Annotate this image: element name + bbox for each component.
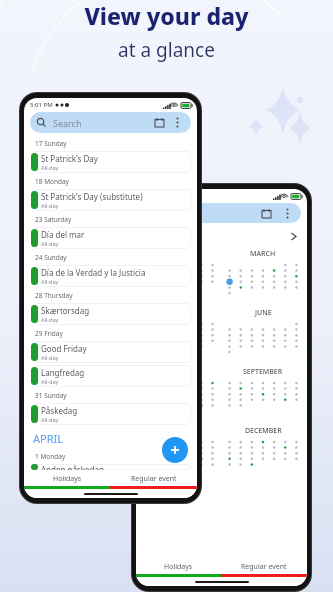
button[interactable]: Anden påskedag	[30, 464, 191, 470]
staticText: Regular event	[241, 562, 287, 572]
button[interactable]: Día de la Verdad y la Justicia	[30, 265, 191, 287]
staticText: Holidays	[164, 562, 193, 572]
button[interactable]: Calendar view	[153, 116, 166, 129]
staticText: All-day	[41, 202, 59, 209]
staticText: All-day	[41, 416, 59, 423]
staticText: 28 Thursday	[35, 291, 73, 300]
staticText: All-day	[41, 240, 59, 247]
staticText: 23 Saturday	[35, 215, 72, 224]
button[interactable]: Regular event	[221, 559, 307, 574]
staticText: All-day	[41, 164, 59, 171]
staticText: 17 Sunday	[35, 139, 67, 148]
staticText: Påskedag	[41, 405, 78, 416]
button[interactable]: Påskedag	[30, 403, 191, 425]
staticText: Good Friday	[41, 343, 87, 354]
button[interactable]: St Patrick's Day (substitute)	[30, 189, 191, 211]
staticText: APRIL	[33, 431, 64, 446]
button[interactable]: Langfredag	[30, 365, 191, 387]
button[interactable]: St Patrick's Day	[30, 151, 191, 173]
button[interactable]: More options	[171, 116, 184, 129]
staticText: 5:01 PM	[30, 101, 53, 109]
staticText: Anden påskedag	[41, 464, 104, 470]
button[interactable]: Next year	[286, 229, 300, 243]
staticText: Día del mar	[41, 229, 85, 240]
staticText: St Patrick's Day	[41, 153, 98, 164]
staticText: All-day	[41, 316, 59, 323]
staticText: St Patrick's Day (substitute)	[41, 191, 143, 202]
button[interactable]: Regular event	[110, 471, 197, 486]
staticText: All-day	[41, 354, 59, 361]
button[interactable]: Holidays	[136, 559, 221, 574]
staticText: Search	[53, 117, 82, 129]
staticText: at a glance	[118, 37, 215, 63]
button[interactable]: Add event	[162, 437, 188, 463]
staticText: Holidays	[53, 474, 82, 484]
staticText: SEPTEMBER	[243, 367, 283, 377]
staticText: NOVEMBER	[160, 426, 199, 436]
staticText: 31 Sunday	[35, 391, 67, 400]
staticText: Día de la Verdad y la Justicia	[41, 267, 146, 278]
button[interactable]: Día del mar	[30, 227, 191, 249]
staticText: 24 Sunday	[35, 253, 67, 262]
staticText: 1 Monday	[35, 452, 66, 461]
staticText: All-day	[41, 378, 59, 385]
staticText: 18 Monday	[35, 177, 69, 186]
staticText: View your day	[84, 0, 249, 31]
button[interactable]: Skærtorsdag	[30, 303, 191, 325]
staticText: Langfredag	[41, 367, 85, 378]
button[interactable]: Holidays	[24, 471, 110, 486]
staticText: Regular event	[131, 474, 177, 484]
button[interactable]: Search	[30, 112, 191, 133]
staticText: MARCH	[250, 249, 276, 259]
button[interactable]: More options	[279, 205, 295, 221]
staticText: DECEMBER	[245, 426, 282, 436]
staticText: 29 Friday	[35, 329, 63, 338]
staticText: JUNE	[255, 308, 272, 318]
button[interactable]: Calendar view	[258, 205, 274, 221]
staticText: All-day	[41, 278, 59, 285]
button[interactable]: Good Friday	[30, 341, 191, 363]
staticText: Skærtorsdag	[41, 305, 90, 316]
